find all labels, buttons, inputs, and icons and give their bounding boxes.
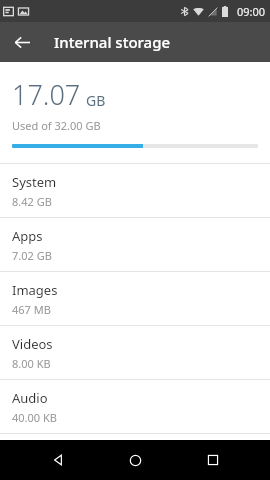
button[interactable]: Home: [115, 440, 155, 480]
staticText: Videos: [12, 335, 53, 353]
staticText: GB: [86, 91, 106, 110]
button[interactable]: Recent apps: [193, 440, 233, 480]
button[interactable]: Back: [38, 440, 78, 480]
button[interactable]: Apps: [0, 218, 270, 271]
staticText: 8.42 GB: [12, 194, 52, 209]
staticText: Images: [12, 281, 58, 299]
staticText: 467 MB: [12, 302, 51, 317]
button[interactable]: Videos: [0, 326, 270, 379]
button[interactable]: Images: [0, 272, 270, 325]
staticText: Internal storage: [54, 32, 171, 52]
staticText: System: [12, 173, 57, 191]
staticText: 17.07: [12, 76, 81, 113]
staticText: 40.00 KB: [12, 410, 57, 425]
button[interactable]: Back: [6, 26, 38, 58]
button[interactable]: Audio: [0, 380, 270, 433]
staticText: 09:00: [237, 4, 266, 19]
staticText: 8.00 KB: [12, 356, 51, 371]
staticText: 7.02 GB: [12, 248, 52, 263]
staticText: Used of 32.00 GB: [12, 118, 101, 133]
staticText: Audio: [12, 389, 48, 407]
staticText: Apps: [12, 227, 43, 245]
button[interactable]: System: [0, 164, 270, 217]
